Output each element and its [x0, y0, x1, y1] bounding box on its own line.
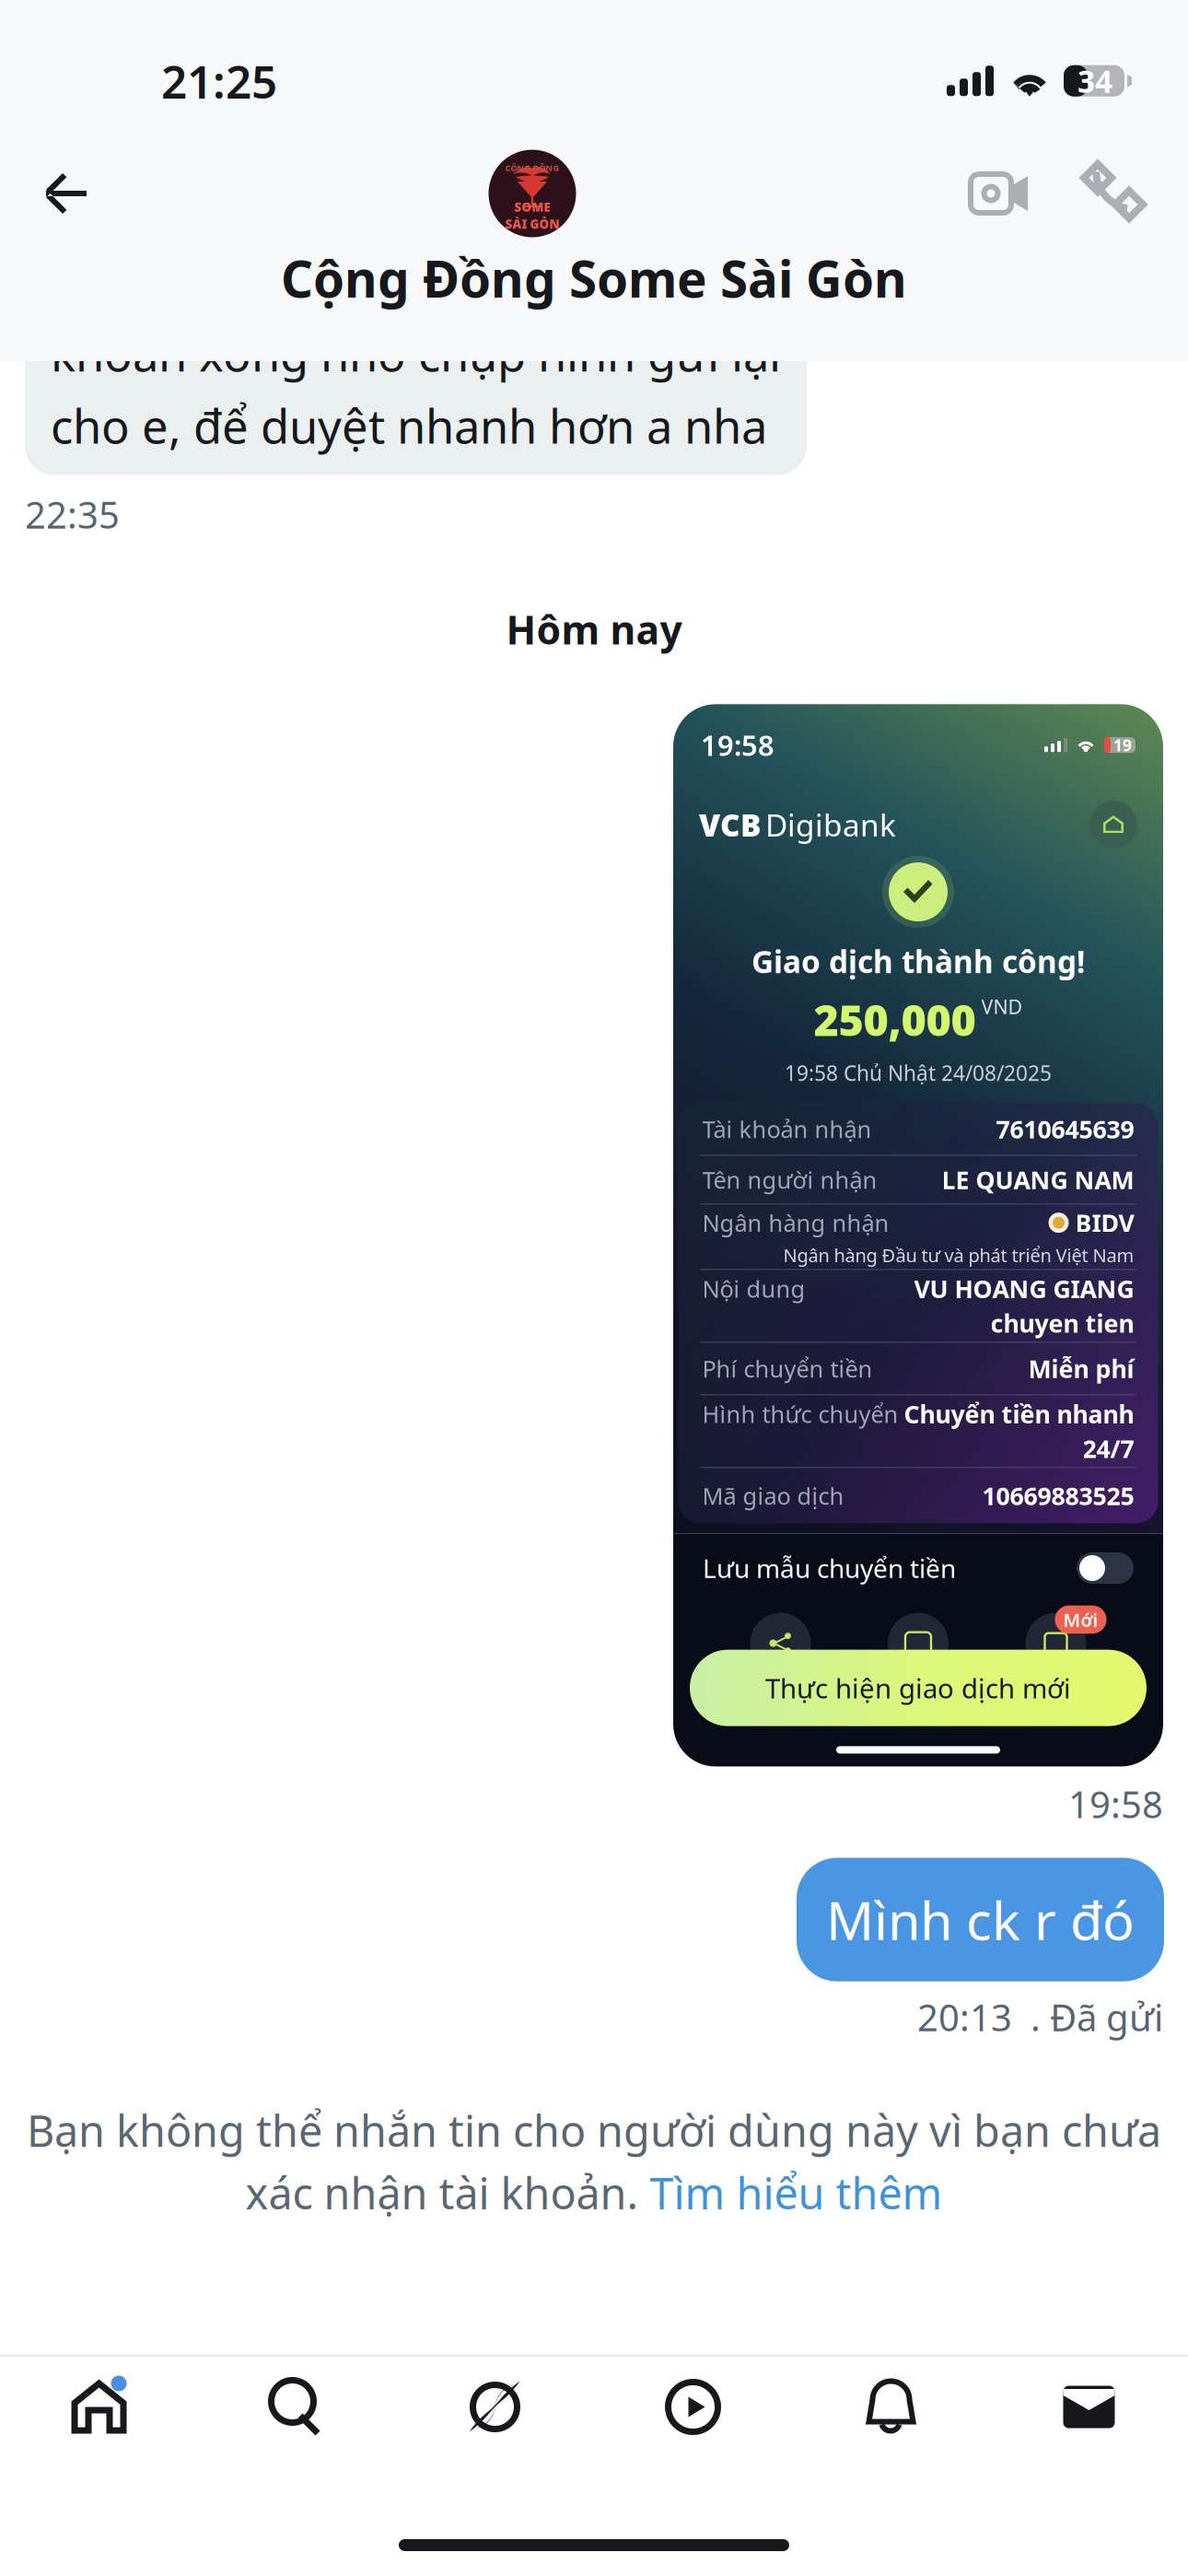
- staticText: 10669883525: [982, 1479, 1134, 1512]
- staticText: khoản xong nhớ chụp hình gửi lại cho e, …: [51, 322, 781, 457]
- staticText: Miễn phí: [1028, 1352, 1134, 1385]
- staticText: LE QUANG NAM: [942, 1163, 1134, 1196]
- button[interactable]: Messages: [990, 2357, 1188, 2457]
- staticText: xác nhận tài khoản.: [245, 2164, 650, 2221]
- staticText: CỘNG ĐỒNG: [505, 162, 559, 174]
- staticText: VND: [981, 993, 1023, 1020]
- staticText: Cộng Đồng Some Sài Gòn: [281, 245, 907, 311]
- staticText: 21:25: [161, 51, 277, 111]
- button[interactable]: Back: [0, 156, 107, 231]
- staticText: BIDV: [1075, 1206, 1134, 1239]
- staticText: Tên người nhận: [702, 1164, 877, 1195]
- staticText: SOME: [514, 199, 550, 215]
- staticText: Giao dịch thành công!: [751, 941, 1085, 982]
- staticText: Lưu mẫu chuyển tiền: [703, 1551, 956, 1585]
- staticText: 20:13 . Đã gửi: [917, 1992, 1163, 2041]
- staticText: Nội dung: [702, 1273, 805, 1304]
- staticText: Thực hiện giao dịch mới: [765, 1670, 1071, 1706]
- staticText: Mới: [1063, 1607, 1098, 1632]
- staticText: 250,000: [814, 991, 976, 1048]
- staticText: SÀI GÒN: [505, 216, 559, 232]
- staticText: 19: [1113, 734, 1132, 756]
- staticText: 24/7: [1083, 1432, 1134, 1465]
- staticText: Ngân hàng Đầu tư và phát triển Việt Nam: [783, 1243, 1134, 1267]
- button[interactable]: Search: [198, 2357, 396, 2457]
- staticText: Mình ck r đó: [826, 1885, 1135, 1955]
- staticText: Hôm nay: [506, 603, 682, 655]
- button[interactable]: Video call: [958, 156, 1070, 231]
- button[interactable]: Voice call: [1070, 153, 1188, 234]
- staticText: Bạn không thể nhắn tin cho người dùng nà…: [27, 2102, 1161, 2159]
- staticText: Chuyển tiền nhanh: [904, 1398, 1134, 1430]
- button[interactable]: Home: [0, 2357, 198, 2457]
- staticText: 19:58: [701, 726, 775, 764]
- staticText: Tìm hiểu thêm: [650, 2164, 943, 2221]
- button[interactable]: Discover: [396, 2357, 594, 2457]
- staticText: Digibank: [765, 804, 896, 845]
- staticText: 19:58: [1068, 1779, 1163, 1828]
- staticText: Phí chuyển tiền: [702, 1353, 873, 1384]
- staticText: VCB: [699, 804, 761, 845]
- staticText: VU HOANG GIANG: [914, 1272, 1134, 1305]
- staticText: Tài khoản nhận: [702, 1114, 872, 1144]
- staticText: 22:35: [25, 490, 120, 539]
- staticText: 19:58 Chủ Nhật 24/08/2025: [785, 1059, 1052, 1087]
- staticText: 34: [1077, 60, 1112, 101]
- staticText: chuyen tien: [990, 1307, 1134, 1339]
- button[interactable]: Tìm hiểu thêm: [650, 2164, 943, 2221]
- staticText: Mã giao dịch: [702, 1480, 844, 1511]
- staticText: Ngân hàng nhận: [702, 1207, 889, 1238]
- button[interactable]: Video: [594, 2357, 792, 2457]
- staticText: 7610645639: [996, 1113, 1134, 1145]
- staticText: Hình thức chuyển: [702, 1398, 898, 1429]
- button[interactable]: Notifications: [792, 2357, 990, 2457]
